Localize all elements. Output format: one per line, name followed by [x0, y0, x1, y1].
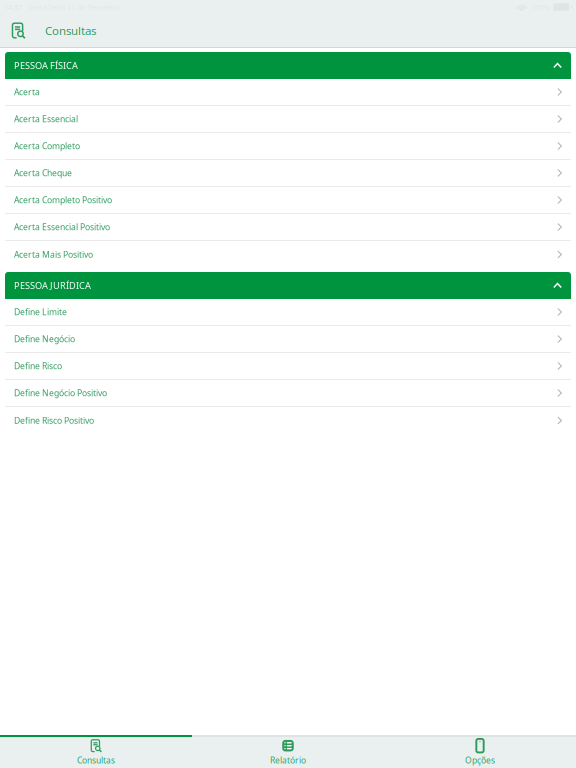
button[interactable]: PESSOA JURÍDICA [5, 272, 571, 299]
staticText: Acerta Completo [14, 140, 80, 152]
staticText: Define Risco [14, 360, 62, 372]
button[interactable]: Consultas [0, 737, 192, 768]
staticText: Define Risco Positivo [14, 415, 94, 426]
button[interactable]: Define Negócio Positivo [5, 380, 571, 407]
staticText: PESSOA FÍSICA [14, 59, 78, 72]
staticText: Acerta Essencial [14, 113, 78, 125]
button[interactable]: Acerta Completo Positivo [5, 187, 571, 214]
staticText: Opções [465, 754, 495, 766]
button[interactable]: Acerta Mais Positivo [5, 241, 571, 268]
staticText: Define Negócio [14, 333, 75, 345]
button[interactable]: Acerta Essencial [5, 106, 571, 133]
button[interactable]: Define Risco [5, 353, 571, 380]
button[interactable]: Acerta Cheque [5, 160, 571, 187]
button[interactable]: Acerta [5, 79, 571, 106]
staticText: Acerta Essencial Positivo [14, 221, 110, 233]
staticText: Define Limite [14, 306, 67, 318]
button[interactable]: Define Negócio [5, 326, 571, 353]
staticText: Relatório [270, 754, 306, 766]
button[interactable]: Define Risco Positivo [5, 407, 571, 434]
staticText: PESSOA JURÍDICA [14, 279, 91, 292]
button[interactable]: Opções [384, 737, 576, 768]
button[interactable]: PESSOA FÍSICA [5, 52, 571, 79]
staticText: Consultas [45, 23, 96, 38]
staticText: 14:57 [4, 2, 22, 12]
staticText: Acerta Cheque [14, 167, 72, 179]
staticText: Acerta Mais Positivo [14, 249, 93, 260]
button[interactable]: Acerta Essencial Positivo [5, 214, 571, 241]
button[interactable]: Consultas [0, 14, 45, 47]
staticText: Acerta [14, 86, 40, 98]
button[interactable]: Relatório [192, 737, 384, 768]
button[interactable]: Define Limite [5, 299, 571, 326]
staticText: Acerta Completo Positivo [14, 194, 112, 206]
staticText: Sexta-feira 11 de fevereiro [22, 2, 120, 12]
staticText: Consultas [77, 754, 115, 766]
button[interactable]: Acerta Completo [5, 133, 571, 160]
staticText: Define Negócio Positivo [14, 387, 107, 399]
